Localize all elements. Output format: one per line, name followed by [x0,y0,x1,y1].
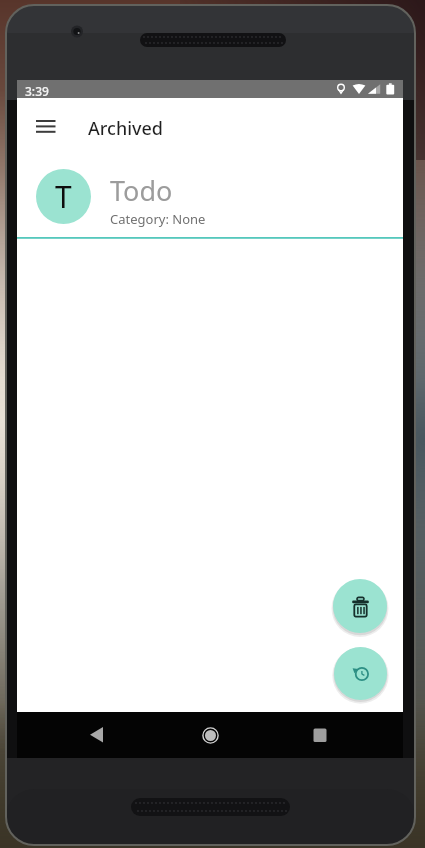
staticText: Archived [88,116,164,141]
button[interactable] [190,716,230,754]
staticText: T [55,176,72,217]
button[interactable] [300,716,340,754]
button[interactable] [333,579,387,633]
button[interactable] [77,716,117,754]
button[interactable] [30,113,62,141]
staticText: 3:39 [25,83,49,99]
staticText: Category: None [110,210,206,228]
staticText: Todo [110,172,173,209]
button[interactable] [334,647,387,700]
button[interactable]: T [17,158,403,237]
